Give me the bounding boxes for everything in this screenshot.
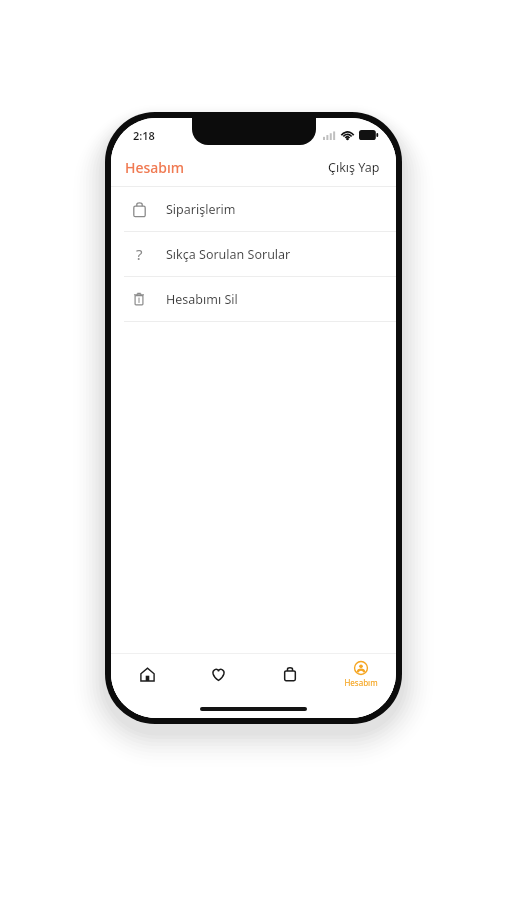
staticText: Hesabım — [125, 158, 185, 177]
button[interactable]: Ana Sayfa — [111, 654, 183, 694]
button[interactable]: Favoriler — [183, 654, 254, 694]
button[interactable]: Hesabımı Sil — [111, 277, 396, 321]
button[interactable]: Hesabım — [325, 654, 396, 694]
button[interactable]: Siparişlerim — [111, 187, 396, 231]
button[interactable]: ? — [111, 232, 396, 276]
staticText: Sıkça Sorulan Sorular — [166, 246, 291, 263]
staticText: Hesabımı Sil — [166, 291, 238, 308]
staticText: ? — [136, 244, 143, 264]
staticText: 2:18 — [133, 128, 155, 143]
staticText: Çıkış Yap — [328, 159, 380, 176]
button[interactable]: Çıkış Yap — [326, 153, 382, 182]
staticText: Hesabım — [344, 677, 378, 688]
staticText: Siparişlerim — [166, 201, 236, 218]
button[interactable]: Sepet — [254, 654, 325, 694]
